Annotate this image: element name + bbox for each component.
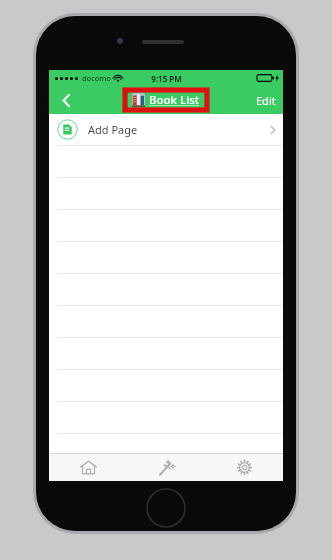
button[interactable]: Edit xyxy=(249,86,283,114)
staticText: Book List xyxy=(149,92,200,108)
button[interactable]: Home xyxy=(49,454,127,481)
button[interactable]: Book List xyxy=(125,90,207,110)
button[interactable]: Magic xyxy=(127,454,205,481)
button[interactable]: Add Page xyxy=(49,114,283,145)
staticText: Add Page xyxy=(88,122,138,137)
button[interactable]: Back xyxy=(49,86,83,114)
button[interactable]: Settings xyxy=(205,454,283,481)
staticText: 9:15 PM xyxy=(151,73,182,84)
staticText: Edit xyxy=(256,93,276,108)
staticText: docomo xyxy=(82,73,111,83)
